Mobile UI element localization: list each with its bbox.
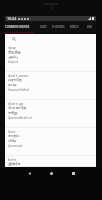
button[interactable]: Back [24,168,35,179]
staticText: போகாதே [8,106,26,110]
button[interactable]: FLOWERS [51,21,66,32]
staticText: don't go [8,101,24,106]
button[interactable]: BIRDS [67,21,81,32]
staticText: love [8,129,16,134]
staticText: கசிறு [8,111,18,115]
staticText: இங்கே [8,162,21,166]
staticText: அப்பு [8,55,18,59]
staticText: காதல் [8,134,20,138]
button[interactable]: stop [5,44,96,72]
staticText: வராதே [8,78,22,82]
button[interactable]: DAYS [37,21,50,32]
button[interactable]: Search [11,36,17,42]
staticText: FLOWERS [52,25,65,29]
staticText: DAYS [40,25,47,29]
button[interactable]: don't go [5,100,96,128]
staticText: COMMON WORDS [5,25,30,29]
staticText: here [8,157,17,162]
button[interactable]: here [5,156,96,167]
button[interactable]: love [5,128,96,156]
button[interactable]: Recent apps [68,168,79,179]
staticText: (naasothitho) [8,87,30,92]
staticText: 16:34 [7,16,17,21]
button[interactable]: don't come [5,72,96,100]
staticText: don't come [8,73,29,78]
button[interactable]: COMMON WORDS [3,21,32,32]
staticText: (premaa) [8,143,23,148]
button[interactable]: ANI [83,21,96,32]
staticText: ANI [87,25,92,29]
staticText: நிறுத்து [8,50,21,54]
staticText: BIRDS [70,25,79,29]
staticText: stop [8,45,17,50]
staticText: பிரே [8,139,17,143]
staticText: (ponnadhathu) [8,115,32,120]
staticText: ராகூ [8,83,17,87]
button[interactable]: Home [46,168,57,179]
staticText: (wipu) [8,59,18,64]
